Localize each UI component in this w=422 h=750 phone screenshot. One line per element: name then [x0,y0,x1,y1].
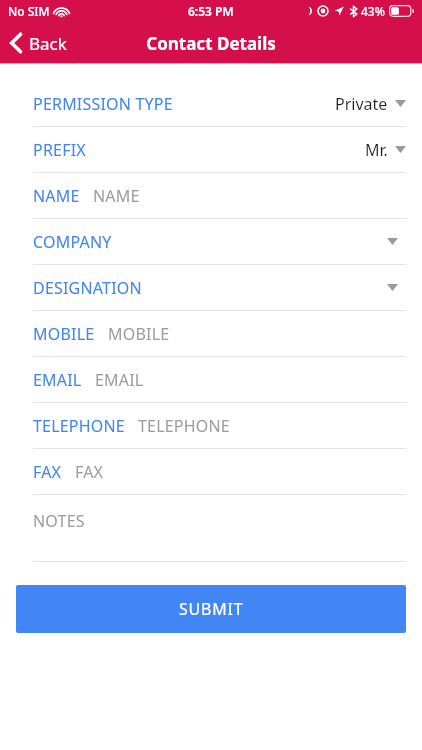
staticText: FAX [33,461,62,483]
staticText: SUBMIT [179,598,244,620]
staticText: TELEPHONE [33,415,125,437]
staticText: PERMISSION TYPE [33,93,173,115]
button[interactable]: PERMISSION TYPE [0,81,422,126]
staticText: Private [335,93,388,115]
button[interactable]: SUBMIT [16,585,406,633]
button[interactable]: COMPANY [0,219,422,264]
button[interactable]: NOTES [0,495,422,561]
staticText: MOBILE [33,323,95,345]
staticText: Mr. [365,139,388,161]
staticText: NAME [33,185,80,207]
staticText: COMPANY [33,231,112,253]
staticText: Back [29,32,67,55]
staticText: FAX [75,461,104,483]
staticText: TELEPHONE [138,415,230,437]
button[interactable]: FAX [0,449,422,494]
button[interactable]: TELEPHONE [0,403,422,448]
staticText: NOTES [33,510,85,532]
staticText: EMAIL [95,369,144,391]
button[interactable]: EMAIL [0,357,422,402]
button[interactable]: Back [0,22,127,64]
staticText: 43% [361,3,385,19]
staticText: NAME [93,185,140,207]
button[interactable]: NAME [0,173,422,218]
staticText: No SIM [8,3,50,19]
button[interactable]: DESIGNATION [0,265,422,310]
staticText: EMAIL [33,369,82,391]
staticText: PREFIX [33,139,86,161]
other: Open DESIGNATION options [387,284,398,291]
staticText: Contact Details [146,32,276,55]
staticText: 6:53 PM [188,3,234,19]
button[interactable]: MOBILE [0,311,422,356]
staticText: MOBILE [108,323,170,345]
button[interactable]: PREFIX [0,127,422,172]
other: Open COMPANY options [387,238,398,245]
staticText: DESIGNATION [33,277,142,299]
